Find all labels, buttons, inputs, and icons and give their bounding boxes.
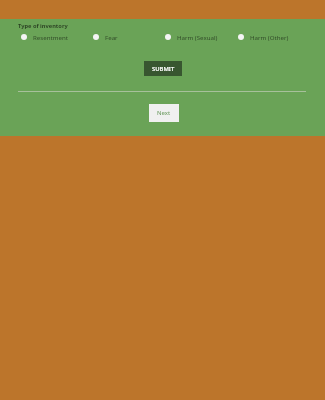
button[interactable]: Fear — [93, 33, 118, 41]
staticText: Fear — [105, 33, 118, 41]
button[interactable]: Harm (Other) — [238, 33, 289, 41]
staticText: Next — [157, 109, 171, 117]
button[interactable]: Next — [149, 104, 179, 122]
staticText: Harm (Sexual) — [177, 33, 218, 41]
staticText: SUBMIT — [152, 65, 175, 73]
button[interactable]: Resentment — [21, 33, 68, 41]
button[interactable]: Harm (Sexual) — [165, 33, 218, 41]
staticText: Resentment — [33, 33, 68, 41]
staticText: Harm (Other) — [250, 33, 289, 41]
staticText: Type of inventory — [18, 22, 68, 30]
button[interactable]: SUBMIT — [144, 61, 182, 76]
